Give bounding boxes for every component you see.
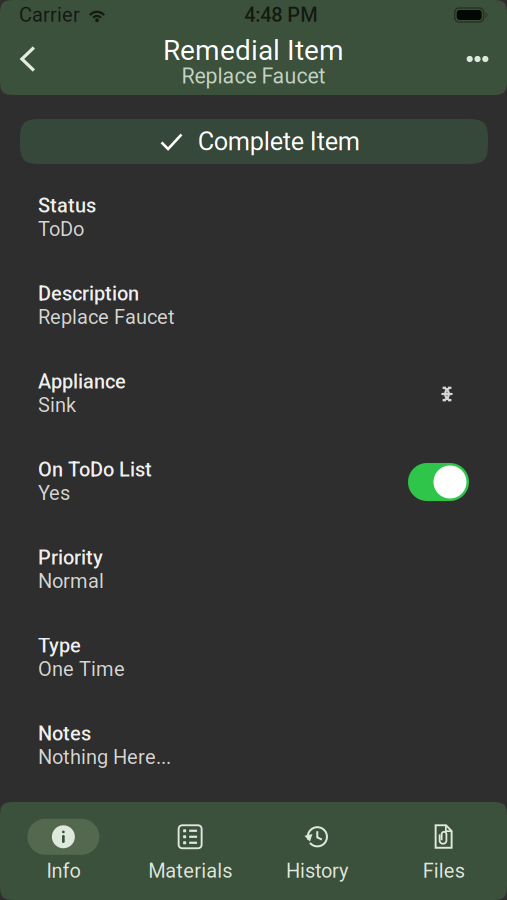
staticText: Sink [38,393,76,417]
button[interactable]: Materials [127,816,254,886]
staticText: ToDo [38,217,84,241]
staticText: Replace Faucet [38,305,175,329]
staticText: History [286,859,348,883]
button[interactable]: Back [0,31,56,87]
staticText: Notes [38,722,91,745]
button[interactable]: More options [448,31,507,87]
staticText: On ToDo List [38,458,152,481]
button[interactable]: Info [0,816,127,886]
button[interactable]: On ToDo List [408,463,469,501]
staticText: Type [38,634,81,657]
staticText: 4:48 PM [244,3,317,27]
staticText: Status [38,194,96,217]
staticText: Carrier [19,3,80,27]
staticText: One Time [38,657,125,681]
staticText: Complete Item [198,127,360,156]
staticText: Priority [38,546,103,569]
staticText: Normal [38,569,104,593]
button[interactable]: History [253,816,380,886]
staticText: Replace Faucet [181,64,325,89]
button[interactable]: Linked appliance [425,372,469,416]
staticText: Yes [38,481,70,505]
staticText: Appliance [38,370,126,393]
staticText: Files [423,859,465,883]
staticText: Materials [148,859,232,883]
staticText: Remedial Item [163,34,344,67]
button[interactable]: Complete Item [20,119,488,164]
staticText: Description [38,282,139,305]
staticText: Info [46,859,80,883]
staticText: Nothing Here... [38,745,171,769]
button[interactable]: Files [380,816,507,886]
